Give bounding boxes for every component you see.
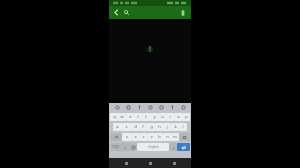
staticText: x [134,134,137,140]
staticText: a [116,124,119,130]
button[interactable]: Home [143,158,157,168]
button[interactable]: r [134,113,142,121]
staticText: y [153,114,156,120]
button[interactable]: b [155,133,163,141]
button[interactable]: Comma [121,143,129,151]
staticText: h [158,124,161,130]
staticText: t [145,114,147,120]
button[interactable]: u [158,113,166,121]
button[interactable]: Enter [177,143,190,151]
staticText: j [166,124,168,130]
button[interactable]: g [147,123,155,131]
button[interactable]: Emoji keyboard [129,143,137,151]
button[interactable]: c [139,133,147,141]
button[interactable]: Sticker [145,103,156,112]
staticText: f [142,124,144,130]
button[interactable]: e [126,113,134,121]
button[interactable]: More options [177,7,188,18]
button[interactable]: Period [169,143,177,151]
button[interactable]: h [155,123,163,131]
staticText: u [161,114,164,120]
staticText: English [148,145,159,149]
button[interactable]: d [131,123,139,131]
button[interactable]: n [163,133,171,141]
button[interactable]: Back [119,158,133,168]
button[interactable]: Navigate up [112,8,121,17]
staticText: r [137,114,139,120]
button[interactable]: Backspace [179,133,190,141]
button[interactable]: i [166,113,174,121]
button[interactable]: k [171,123,179,131]
staticText: s [125,124,128,130]
button[interactable]: x [131,133,139,141]
button[interactable]: Space [137,143,169,151]
button[interactable]: Emoji [111,103,123,112]
button[interactable]: More [167,103,178,112]
staticText: d [134,124,137,130]
staticText: z [126,134,128,140]
button[interactable]: m [171,133,179,141]
button[interactable]: f [139,123,147,131]
button[interactable]: y [150,113,158,121]
button[interactable]: GIF [134,103,145,112]
staticText: g [150,124,153,130]
button[interactable]: s [122,123,131,131]
staticText: n [166,134,169,140]
staticText: m [173,134,177,140]
staticText: c [142,134,145,140]
button[interactable]: Clipboard [123,103,134,112]
button[interactable]: t [142,113,150,121]
button[interactable]: Voice input [178,103,189,112]
button[interactable]: Symbols [110,143,121,151]
button[interactable]: l [179,123,187,131]
button[interactable]: z [122,133,131,141]
button[interactable]: w [118,113,126,121]
staticText: p [185,114,188,120]
staticText: v [150,134,153,140]
staticText: ?123 [112,145,119,149]
button[interactable]: j [163,123,171,131]
button[interactable]: Recents [167,158,181,168]
button[interactable]: p [182,113,190,121]
button[interactable]: Settings [156,103,167,112]
staticText: k [174,124,177,130]
staticText: b [158,134,161,140]
button[interactable]: Shift [110,133,122,141]
staticText: l [182,124,184,130]
staticText: i [169,114,171,120]
button[interactable]: a [113,123,122,131]
button[interactable]: v [147,133,155,141]
staticText: q [113,114,116,120]
button[interactable]: Search [122,8,131,17]
staticText: o [177,114,180,120]
button[interactable]: o [174,113,182,121]
staticText: e [129,114,132,120]
button[interactable]: q [110,113,118,121]
staticText: w [120,114,124,120]
